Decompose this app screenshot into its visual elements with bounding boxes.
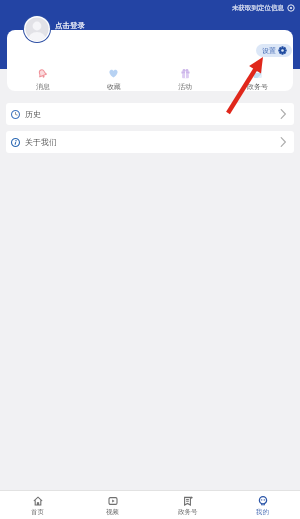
staticText: 收藏: [107, 82, 121, 91]
staticText: 关于我们: [25, 137, 57, 147]
staticText: 点击登录: [55, 21, 85, 30]
staticText: 我的: [256, 508, 269, 516]
button[interactable]: 首页: [0, 490, 75, 519]
staticText: 未获取到定位信息: [232, 4, 284, 12]
staticText: 视频: [106, 508, 119, 516]
button[interactable]: 政务号: [221, 62, 293, 91]
staticText: 政务号: [247, 82, 268, 91]
staticText: 政务号: [178, 508, 198, 516]
staticText: 消息: [36, 82, 50, 91]
staticText: 设置: [262, 46, 276, 55]
staticText: 历史: [25, 109, 41, 119]
staticText: 活动: [178, 82, 192, 91]
button[interactable]: 政务号: [150, 490, 225, 519]
button[interactable]: [23, 15, 51, 43]
staticText: 首页: [31, 508, 44, 516]
button[interactable]: 未获取到定位信息: [200, 2, 295, 14]
button[interactable]: 活动: [149, 62, 221, 91]
button[interactable]: 关于我们: [6, 131, 294, 153]
button[interactable]: 收藏: [78, 62, 149, 91]
button[interactable]: 历史: [6, 103, 294, 125]
button[interactable]: 点击登录: [55, 21, 85, 30]
button[interactable]: 视频: [75, 490, 150, 519]
button[interactable]: 消息: [7, 62, 78, 91]
button[interactable]: 我的: [225, 490, 300, 519]
button[interactable]: 设置: [262, 44, 287, 57]
